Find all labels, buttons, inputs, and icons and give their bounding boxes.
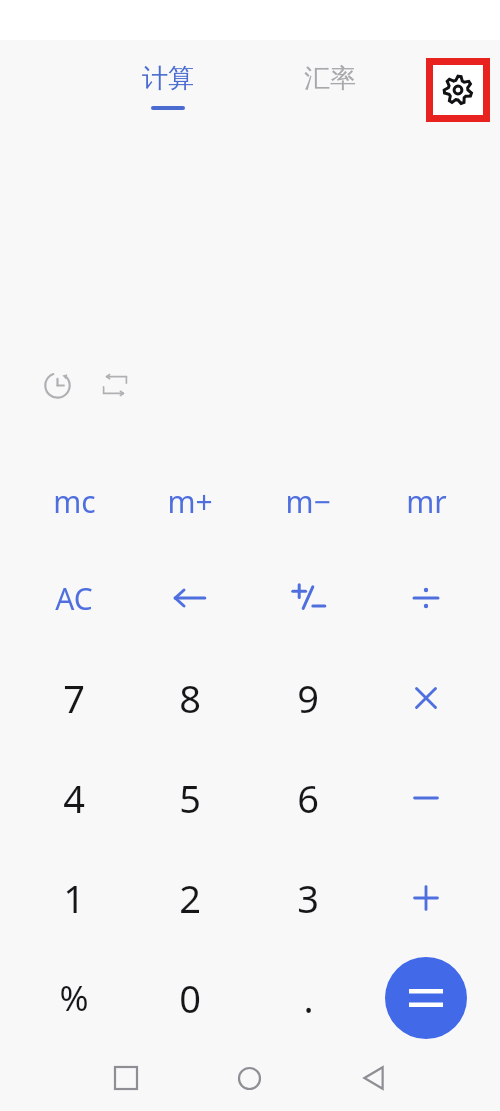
- button[interactable]: 计算: [118, 62, 218, 110]
- staticText: 计算: [118, 62, 218, 95]
- button[interactable]: 2: [136, 852, 244, 944]
- staticText: 8: [179, 672, 201, 724]
- button[interactable]: Multiply: [372, 652, 480, 744]
- button[interactable]: 4: [20, 752, 128, 844]
- button[interactable]: mr: [372, 455, 480, 547]
- staticText: AC: [55, 578, 93, 619]
- button[interactable]: Minus: [372, 752, 480, 844]
- button[interactable]: AC: [20, 552, 128, 644]
- button[interactable]: Divide: [372, 552, 480, 644]
- staticText: .: [303, 972, 314, 1024]
- button[interactable]: 0: [136, 952, 244, 1044]
- button[interactable]: Recents: [108, 1060, 144, 1096]
- button[interactable]: 5: [136, 752, 244, 844]
- button[interactable]: 8: [136, 652, 244, 744]
- button[interactable]: Home: [231, 1060, 267, 1096]
- button[interactable]: %: [20, 952, 128, 1044]
- staticText: 4: [63, 772, 85, 824]
- button[interactable]: 6: [254, 752, 362, 844]
- button[interactable]: m−: [254, 455, 362, 547]
- button[interactable]: Plus: [372, 852, 480, 944]
- button[interactable]: Equals: [385, 957, 467, 1039]
- button[interactable]: m+: [136, 455, 244, 547]
- button[interactable]: 3: [254, 852, 362, 944]
- button[interactable]: mc: [20, 455, 128, 547]
- button[interactable]: 汇率: [280, 62, 380, 102]
- staticText: 7: [63, 672, 85, 724]
- button[interactable]: 7: [20, 652, 128, 744]
- staticText: 汇率: [280, 62, 380, 95]
- staticText: 3: [297, 872, 319, 924]
- staticText: 6: [297, 772, 319, 824]
- button[interactable]: Settings: [433, 65, 483, 115]
- staticText: 9: [297, 672, 319, 724]
- staticText: m−: [285, 481, 331, 522]
- button[interactable]: Mode: [97, 367, 133, 403]
- button[interactable]: History: [39, 367, 75, 403]
- staticText: mc: [53, 481, 96, 522]
- staticText: 0: [179, 972, 201, 1024]
- staticText: 1: [63, 872, 85, 924]
- button[interactable]: Backspace: [136, 552, 244, 644]
- button[interactable]: 9: [254, 652, 362, 744]
- staticText: %: [59, 974, 89, 1022]
- button[interactable]: .: [254, 952, 362, 1044]
- button[interactable]: Plus minus: [254, 552, 362, 644]
- staticText: m+: [167, 481, 213, 522]
- button[interactable]: 1: [20, 852, 128, 944]
- button[interactable]: Back: [356, 1060, 392, 1096]
- staticText: mr: [406, 481, 447, 522]
- staticText: 5: [179, 772, 201, 824]
- staticText: 2: [179, 872, 201, 924]
